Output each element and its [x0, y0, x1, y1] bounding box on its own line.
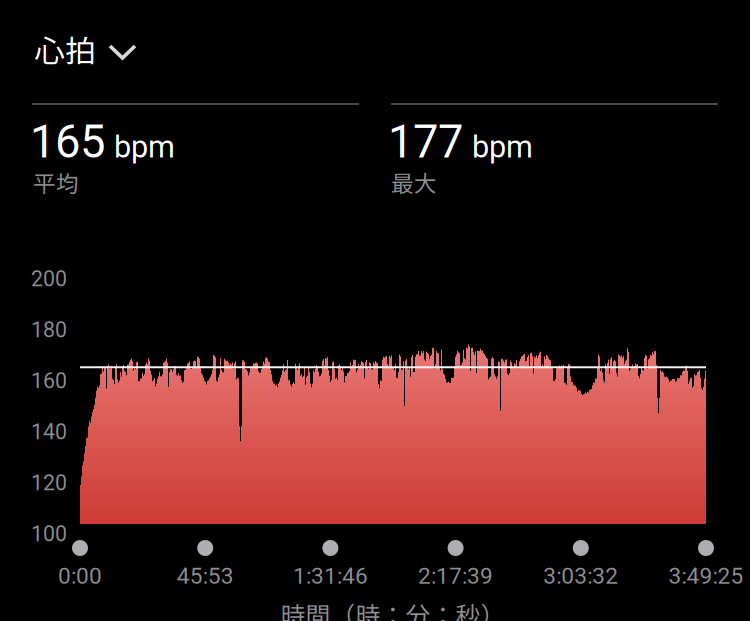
- staticText: 3:03:32: [543, 563, 618, 589]
- staticText: 心拍: [34, 27, 96, 71]
- staticText: 180: [31, 317, 67, 342]
- staticText: bpm: [472, 129, 533, 165]
- staticText: bpm: [114, 129, 175, 165]
- staticText: 200: [31, 266, 67, 291]
- button[interactable]: 心拍: [20, 0, 152, 56]
- staticText: 3:49:25: [668, 563, 743, 589]
- staticText: 165: [30, 115, 105, 168]
- staticText: 最大: [391, 166, 437, 198]
- staticText: 1:31:46: [293, 563, 368, 589]
- staticText: 100: [31, 521, 67, 546]
- staticText: 0:00: [58, 563, 102, 589]
- staticText: 120: [31, 470, 67, 495]
- staticText: 140: [31, 419, 67, 444]
- staticText: 160: [31, 368, 67, 393]
- staticText: 時間（時：分：秒）: [280, 596, 505, 621]
- staticText: 平均: [33, 166, 79, 198]
- staticText: 2:17:39: [418, 563, 493, 589]
- staticText: 177: [388, 115, 463, 168]
- staticText: 45:53: [177, 563, 234, 589]
